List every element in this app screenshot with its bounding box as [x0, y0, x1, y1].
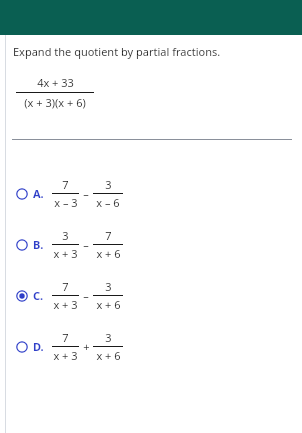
staticText: – [83, 288, 89, 303]
staticText: D. [33, 339, 44, 354]
staticText: 3 [105, 330, 112, 345]
staticText: B. [33, 237, 44, 252]
staticText: x + 3 [53, 297, 78, 312]
staticText: x + 6 [96, 297, 121, 312]
staticText: 7 [62, 330, 69, 345]
staticText: – [83, 186, 89, 201]
staticText: x – 3 [54, 195, 78, 210]
button[interactable]: B. [0, 219, 302, 270]
staticText: 3 [105, 177, 112, 192]
staticText: x + 6 [96, 348, 121, 363]
staticText: x + 6 [96, 246, 121, 261]
staticText: 7 [62, 279, 69, 294]
staticText: x – 6 [96, 195, 120, 210]
staticText: 4x + 33 [37, 75, 74, 90]
staticText: (x + 3)(x + 6) [24, 95, 86, 110]
staticText: A. [33, 186, 44, 201]
button[interactable]: A. [0, 168, 302, 219]
staticText: + [83, 339, 90, 354]
staticText: x + 3 [53, 246, 78, 261]
button[interactable]: D. [0, 321, 302, 372]
staticText: 7 [62, 177, 69, 192]
staticText: Expand the quotient by partial fractions… [13, 44, 221, 59]
staticText: C. [33, 288, 44, 303]
staticText: 7 [105, 228, 112, 243]
staticText: 3 [105, 279, 112, 294]
button[interactable]: C. [0, 270, 302, 321]
staticText: x + 3 [53, 348, 78, 363]
staticText: 3 [62, 228, 69, 243]
staticText: – [83, 237, 89, 252]
